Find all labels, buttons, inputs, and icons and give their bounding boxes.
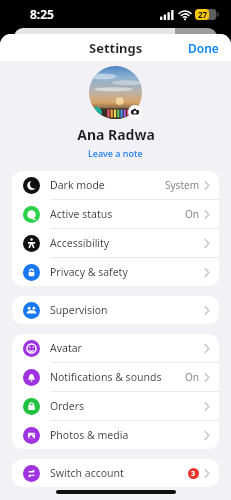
- staticText: 3: [191, 469, 196, 479]
- button[interactable]: Done: [176, 35, 231, 61]
- staticText: System: [165, 178, 199, 192]
- button[interactable]: Avatar: [12, 334, 219, 362]
- button[interactable]: Leave a note: [80, 145, 151, 161]
- button[interactable]: Change profile photo: [128, 105, 142, 119]
- button[interactable]: Notifications & sounds: [12, 363, 219, 391]
- staticText: Done: [188, 40, 219, 56]
- button[interactable]: Orders: [12, 392, 219, 420]
- button[interactable]: Accessibility: [12, 229, 219, 257]
- staticText: Privacy & safety: [50, 265, 204, 279]
- staticText: Supervision: [50, 303, 204, 317]
- staticText: On: [185, 207, 199, 221]
- staticText: Accessibility: [50, 236, 204, 250]
- staticText: 27: [198, 9, 208, 20]
- staticText: Photos & media: [50, 428, 204, 442]
- staticText: On: [185, 370, 199, 384]
- staticText: Dark mode: [50, 178, 165, 192]
- staticText: Leave a note: [88, 147, 143, 159]
- staticText: Avatar: [50, 341, 204, 355]
- staticText: Switch account: [50, 466, 188, 480]
- staticText: Ana Radwa: [77, 125, 155, 144]
- button[interactable]: Dark mode: [12, 171, 219, 199]
- button[interactable]: Supervision: [12, 296, 219, 324]
- staticText: Orders: [50, 399, 204, 413]
- staticText: Active status: [50, 207, 185, 221]
- button[interactable]: Switch account: [12, 459, 219, 487]
- button[interactable]: Privacy & safety: [12, 258, 219, 286]
- button[interactable]: Active status: [12, 200, 219, 228]
- staticText: Settings: [89, 39, 143, 57]
- button[interactable]: Photos & media: [12, 421, 219, 449]
- staticText: 8:25: [30, 6, 54, 22]
- staticText: Notifications & sounds: [50, 370, 185, 384]
